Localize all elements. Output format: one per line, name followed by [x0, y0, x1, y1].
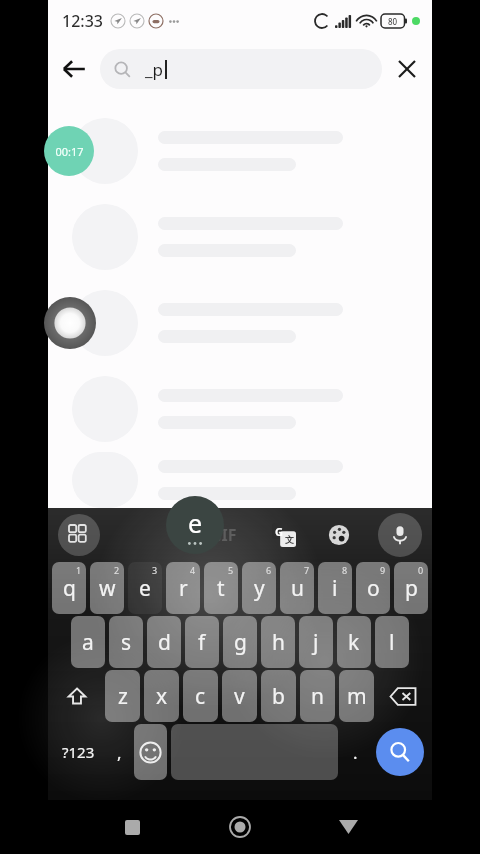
staticText: o — [367, 574, 380, 603]
staticText: g — [234, 628, 247, 657]
button[interactable]: g — [223, 616, 257, 668]
staticText: q — [63, 574, 76, 603]
staticText: 2 — [114, 564, 120, 576]
staticText: k — [348, 628, 360, 657]
staticText: 文 — [285, 534, 294, 545]
staticText: 12:33 — [62, 10, 103, 32]
staticText: r — [179, 574, 188, 603]
button[interactable]: s — [109, 616, 143, 668]
staticText: 7 — [304, 564, 310, 576]
staticText: v — [234, 682, 245, 711]
button[interactable] — [48, 194, 432, 280]
button[interactable]: i — [318, 562, 352, 614]
button[interactable]: Voice input — [378, 513, 422, 557]
button[interactable] — [48, 452, 432, 508]
staticText: 4 — [190, 564, 196, 576]
button[interactable]: z — [105, 670, 140, 722]
button[interactable]: h — [261, 616, 295, 668]
button[interactable]: t — [204, 562, 238, 614]
staticText: h — [272, 628, 285, 657]
button[interactable]: e — [128, 562, 162, 614]
button[interactable]: GIF — [202, 516, 245, 554]
staticText: 3 — [152, 564, 158, 576]
button[interactable]: w — [90, 562, 124, 614]
button[interactable]: m — [339, 670, 374, 722]
button[interactable]: _p — [100, 49, 382, 89]
button[interactable]: o — [356, 562, 390, 614]
button[interactable]: Recent apps — [78, 800, 186, 854]
staticText: d — [158, 628, 171, 657]
button[interactable]: a — [71, 616, 105, 668]
button[interactable]: n — [300, 670, 335, 722]
staticText: 8 — [342, 564, 348, 576]
button[interactable]: Backspace — [378, 670, 428, 722]
button[interactable]: Back — [48, 43, 100, 95]
staticText: e — [188, 506, 203, 540]
button[interactable]: c — [183, 670, 218, 722]
staticText: a — [82, 628, 94, 657]
staticText: 9 — [380, 564, 386, 576]
staticText: e — [139, 574, 151, 603]
staticText: 80 — [388, 16, 398, 27]
button[interactable] — [48, 366, 432, 452]
button[interactable]: ?123 — [52, 724, 104, 780]
button[interactable] — [48, 280, 432, 366]
staticText: w — [99, 574, 116, 603]
button[interactable]: l — [375, 616, 409, 668]
button[interactable]: p — [394, 562, 428, 614]
staticText: x — [156, 682, 168, 711]
staticText: f — [198, 628, 206, 657]
staticText: n — [311, 682, 324, 711]
button[interactable]: j — [299, 616, 333, 668]
staticText: j — [313, 628, 319, 657]
staticText: , — [117, 741, 122, 764]
button[interactable]: d — [147, 616, 181, 668]
button[interactable]: r — [166, 562, 200, 614]
button[interactable]: . — [340, 724, 370, 780]
staticText: u — [291, 574, 304, 603]
button[interactable]: f — [185, 616, 219, 668]
staticText: ?123 — [62, 742, 95, 762]
staticText: i — [332, 574, 338, 603]
staticText: p — [405, 574, 418, 603]
button[interactable]: Home — [186, 800, 294, 854]
button[interactable]: , — [106, 724, 132, 780]
button[interactable]: x — [144, 670, 179, 722]
button[interactable]: v — [222, 670, 257, 722]
staticText: 5 — [228, 564, 234, 576]
button[interactable]: Emoji — [134, 724, 167, 780]
button[interactable]: q — [52, 562, 86, 614]
button[interactable]: Keyboard options — [58, 514, 100, 556]
staticText: y — [254, 574, 265, 603]
button[interactable]: Themes — [322, 518, 356, 552]
staticText: G — [275, 524, 283, 539]
staticText: . — [353, 741, 358, 764]
button[interactable]: u — [280, 562, 314, 614]
staticText: 00:17 — [55, 144, 84, 159]
staticText: GIF — [210, 524, 237, 546]
staticText: b — [272, 682, 285, 711]
button[interactable]: b — [261, 670, 296, 722]
staticText: t — [217, 574, 225, 603]
staticText: s — [121, 628, 132, 657]
staticText: l — [389, 628, 395, 657]
button[interactable]: k — [337, 616, 371, 668]
button[interactable]: Shift — [52, 670, 101, 722]
button[interactable]: 00:17 — [48, 108, 432, 194]
button[interactable]: Translate — [268, 519, 300, 551]
button[interactable]: y — [242, 562, 276, 614]
staticText: c — [195, 682, 206, 711]
staticText: 0 — [418, 564, 424, 576]
button[interactable]: Back — [294, 800, 402, 854]
staticText: _p — [145, 58, 164, 81]
staticText: 1 — [76, 564, 82, 576]
staticText: z — [118, 682, 128, 711]
button[interactable]: Search — [376, 728, 424, 776]
button[interactable]: Clear search — [382, 44, 432, 94]
staticText: m — [347, 682, 367, 711]
button[interactable]: Space — [171, 724, 338, 780]
staticText: 6 — [266, 564, 272, 576]
button[interactable]: e — [166, 496, 224, 554]
